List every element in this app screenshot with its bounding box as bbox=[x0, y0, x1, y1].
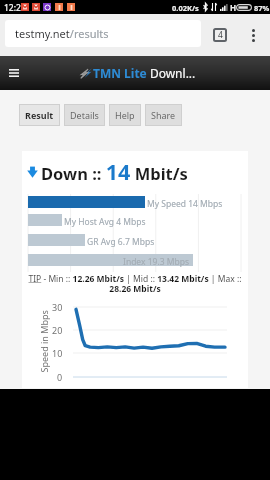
staticText: testmy.net/results bbox=[15, 26, 109, 41]
staticText: My Speed 14 Mbps bbox=[147, 198, 223, 210]
button[interactable]: Details bbox=[64, 104, 105, 126]
staticText: 0 bbox=[57, 371, 63, 383]
staticText: Share bbox=[151, 109, 176, 121]
button[interactable]: Tabs bbox=[213, 28, 227, 42]
button[interactable]: Share bbox=[145, 104, 182, 126]
staticText: GR Avg 6.7 Mbps bbox=[87, 236, 155, 248]
staticText: 12:20 bbox=[4, 2, 26, 14]
staticText: Help bbox=[115, 109, 135, 121]
button[interactable]: testmy.net/results bbox=[5, 20, 201, 47]
staticText: Index 19.3 Mbps bbox=[123, 256, 190, 268]
staticText: TIP - Min :: 12.26 Mbit/s | Mid :: 13.42… bbox=[25, 273, 245, 295]
staticText: 20 bbox=[52, 324, 63, 336]
staticText: 10 bbox=[52, 347, 63, 359]
staticText: My Host Avg 4 Mbps bbox=[64, 216, 146, 228]
staticText: TMN Lite Downl... bbox=[93, 65, 196, 81]
staticText: 30 bbox=[52, 301, 63, 313]
staticText: Result bbox=[25, 109, 54, 121]
button[interactable]: Menu bbox=[2, 61, 26, 85]
staticText: 0.02K/s bbox=[172, 3, 199, 13]
staticText: Speed in Mbps bbox=[37, 309, 49, 372]
button[interactable]: Help bbox=[109, 104, 141, 126]
button[interactable]: More options bbox=[242, 24, 264, 46]
staticText: Down :: 14 Mbit/s bbox=[41, 157, 188, 186]
staticText: 87% bbox=[254, 3, 270, 13]
button[interactable]: Result bbox=[19, 104, 60, 126]
staticText: Details bbox=[70, 109, 99, 121]
staticText: 4 bbox=[218, 29, 223, 41]
staticText: H bbox=[230, 2, 237, 13]
